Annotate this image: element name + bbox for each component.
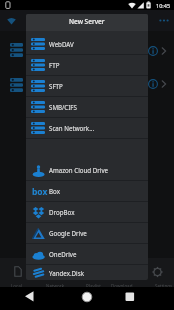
staticText: Playlist [86, 283, 101, 289]
button[interactable] [81, 291, 93, 303]
button[interactable]: Playlist [77, 282, 109, 289]
button[interactable]: OneDrive [26, 244, 148, 264]
staticText: Yandex.Disk [49, 269, 84, 277]
staticText: Box [49, 187, 60, 195]
staticText: DropBox [49, 208, 75, 216]
staticText: Settings [155, 283, 173, 289]
staticText: box [32, 186, 46, 198]
button[interactable] [125, 292, 135, 302]
staticText: Local [11, 283, 22, 289]
button[interactable]: FTP [26, 55, 148, 75]
staticText: Google Drive [49, 229, 87, 237]
button[interactable]: Download [106, 282, 138, 289]
staticText: OneDrive [49, 250, 77, 258]
button[interactable]: Network [39, 282, 71, 289]
staticText: Scan Network... [49, 124, 95, 132]
staticText: Network [46, 283, 65, 289]
button[interactable]: box [26, 181, 148, 201]
staticText: FTP [49, 61, 60, 69]
button[interactable]: Scan Network... [26, 118, 148, 138]
button[interactable]: SFTP [26, 76, 148, 96]
button[interactable]: Settings [148, 282, 174, 289]
staticText: Amazon Cloud Drive [49, 166, 109, 174]
staticText: New Server [69, 17, 105, 26]
button[interactable]: Yandex.Disk [26, 265, 148, 280]
button[interactable]: Amazon Cloud Drive [26, 160, 148, 180]
button[interactable]: DropBox [26, 202, 148, 222]
button[interactable]: WebDAV [26, 34, 148, 54]
button[interactable]: Google Drive [26, 223, 148, 243]
staticText: 10:45 [156, 2, 171, 9]
staticText: WebDAV [49, 40, 74, 48]
staticText: SFTP [49, 82, 63, 90]
button[interactable]: SMB/CIFS [26, 97, 148, 117]
staticText: SMB/CIFS [49, 103, 77, 111]
button[interactable] [22, 290, 36, 303]
staticText: Download [111, 283, 133, 289]
button[interactable]: Local [0, 282, 32, 289]
